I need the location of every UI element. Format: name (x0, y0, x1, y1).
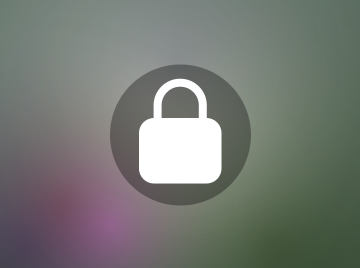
button[interactable]: Locked — tap to unlock (0, 0, 360, 268)
